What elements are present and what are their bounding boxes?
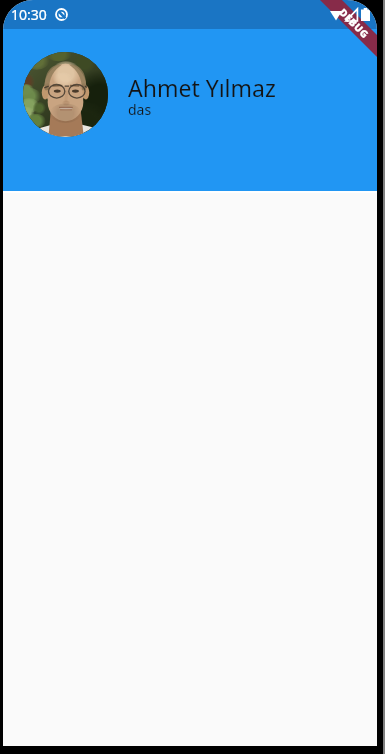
- staticText: das: [128, 100, 152, 119]
- button[interactable]: Profile photo: [23, 52, 108, 137]
- staticText: DEBUG: [336, 5, 372, 41]
- staticText: Ahmet Yılmaz: [128, 72, 276, 103]
- staticText: 10:30: [11, 5, 47, 24]
